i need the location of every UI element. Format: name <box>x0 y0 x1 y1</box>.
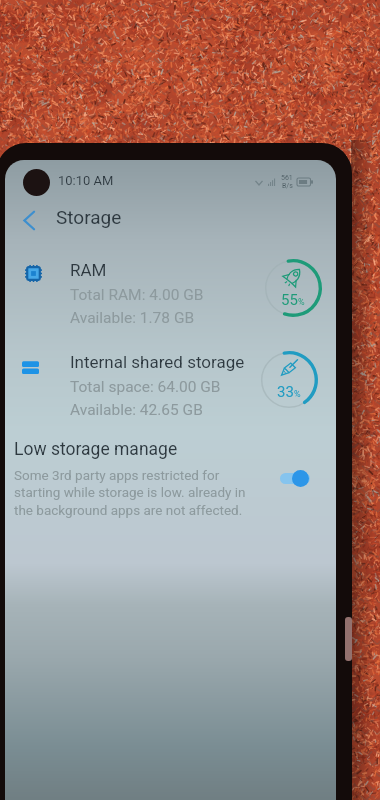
staticText: Available: 1.78 GB <box>70 309 195 327</box>
staticText: 33 <box>277 383 294 401</box>
staticText: 561 <box>281 174 293 182</box>
button[interactable]: Back <box>11 202 47 238</box>
button[interactable]: Internal shared storage <box>5 348 336 436</box>
staticText: Internal shared storage <box>70 352 245 372</box>
staticText: Some 3rd party apps restricted for start… <box>14 467 246 519</box>
staticText: Total space: 64.00 GB <box>70 378 221 396</box>
staticText: Low storage manage <box>14 439 178 460</box>
staticText: % <box>298 297 305 308</box>
button[interactable]: RAM <box>5 256 336 344</box>
staticText: Available: 42.65 GB <box>70 401 203 419</box>
staticText: B/s <box>282 182 293 190</box>
staticText: Storage <box>56 206 122 228</box>
staticText: 10:10 AM <box>58 173 114 188</box>
staticText: 55 <box>281 291 298 309</box>
staticText: % <box>294 389 301 400</box>
button[interactable]: Low storage manage <box>5 434 336 522</box>
staticText: Total RAM: 4.00 GB <box>70 286 204 304</box>
staticText: RAM <box>70 260 107 280</box>
